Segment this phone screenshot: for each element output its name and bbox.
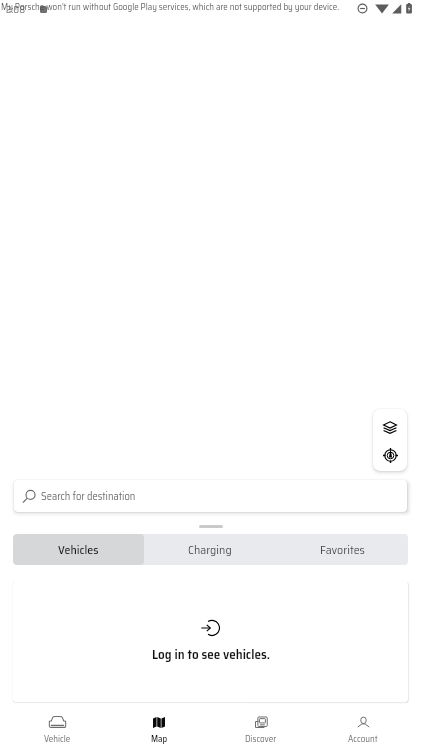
staticText: Favorites [320,540,365,559]
staticText: Search for destination [41,488,136,505]
button[interactable]: Favorites [276,534,408,565]
staticText: Account [348,732,378,746]
button[interactable]: Map layers [373,409,407,442]
button[interactable]: Account [312,712,414,750]
staticText: My Porsche won't run without Google Play… [1,0,340,14]
button[interactable]: Discover [210,712,312,750]
staticText: Log in to see vehicles. [152,644,270,665]
staticText: Map [151,732,168,746]
button[interactable]: Log in to see vehicles. [13,582,408,702]
button[interactable]: Search for destination [14,480,407,512]
button[interactable]: My location [373,442,407,471]
staticText: Discover [245,732,277,746]
button[interactable]: Map [108,712,210,750]
button[interactable]: Vehicles [13,534,144,565]
button[interactable]: Vehicle [7,712,108,750]
staticText: Charging [188,540,232,559]
button[interactable]: Charging [144,534,276,565]
staticText: Vehicle [44,732,71,746]
staticText: Vehicles [58,540,99,559]
staticText: 2:08 [6,2,26,18]
